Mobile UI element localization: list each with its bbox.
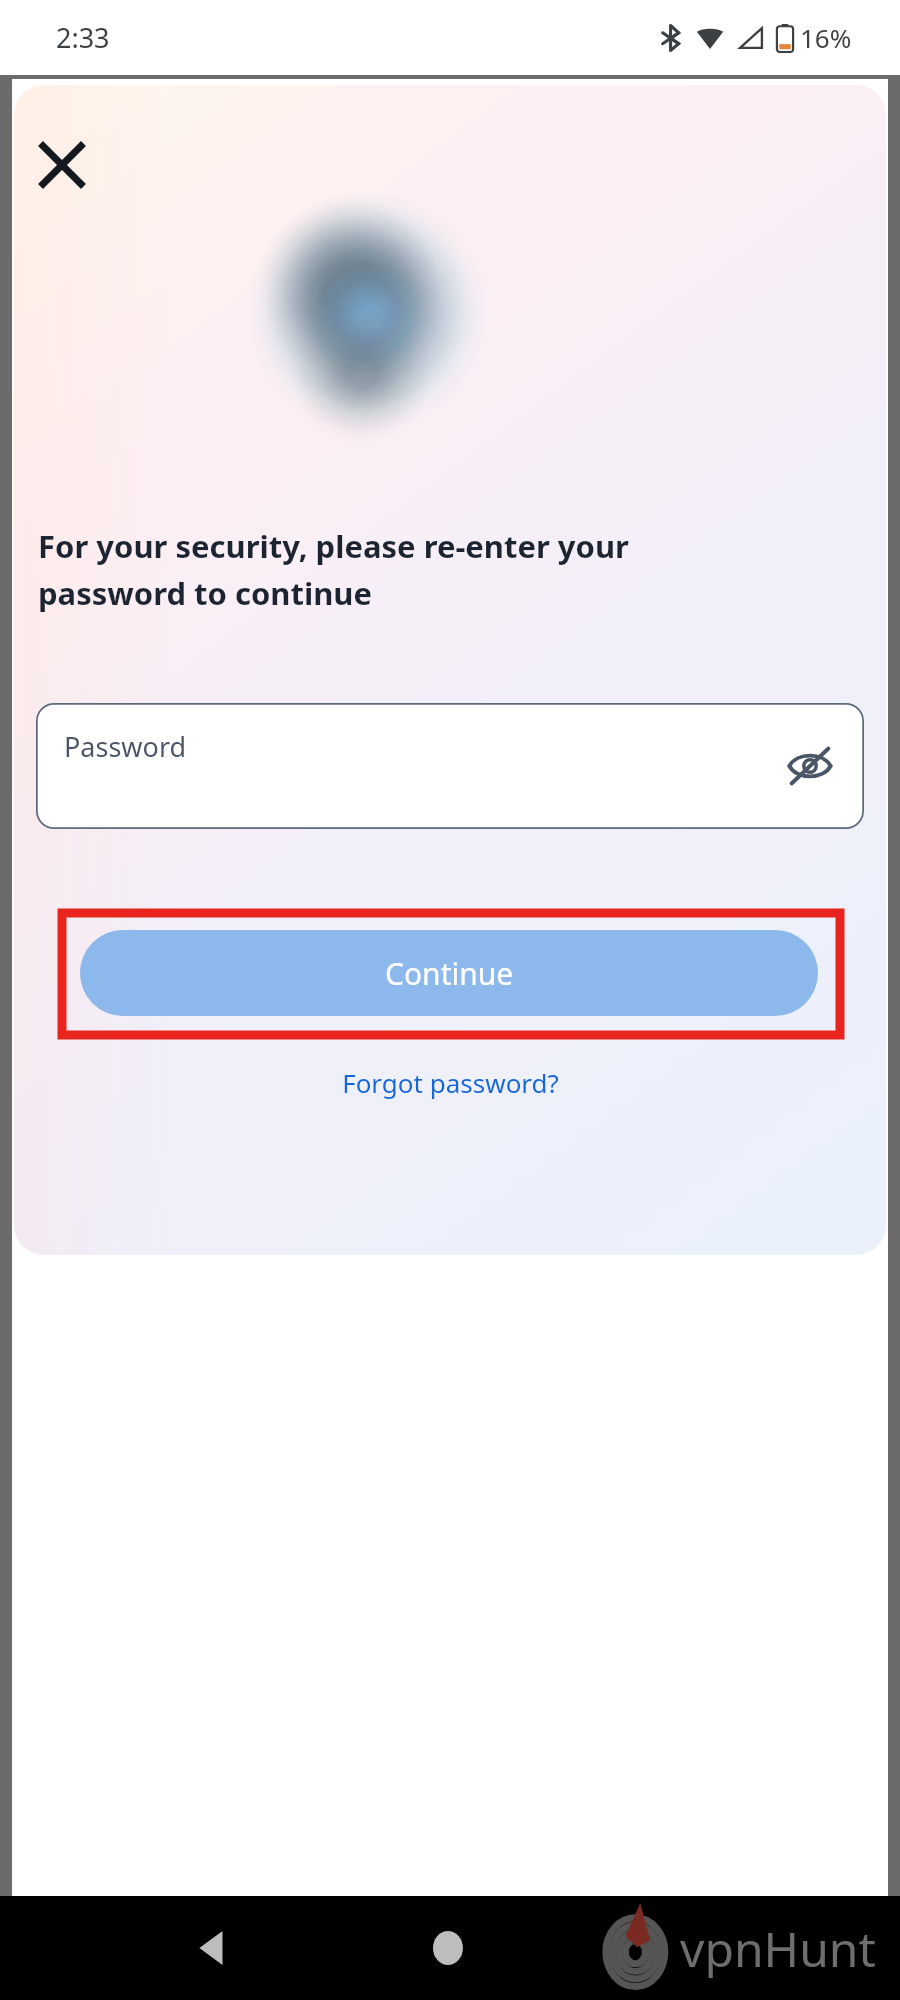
staticText: 2:33	[56, 19, 110, 56]
button[interactable]: Close	[24, 127, 100, 203]
button[interactable]: Continue	[80, 930, 818, 1016]
staticText: Password	[64, 728, 187, 765]
button[interactable]: Forgot password?	[14, 1053, 886, 1111]
button[interactable]: Show password	[774, 730, 846, 802]
staticText: vpnHunt	[680, 1916, 876, 1981]
staticText: Continue	[385, 953, 514, 994]
staticText: Forgot password?	[342, 1065, 559, 1100]
button[interactable]: Home	[405, 1903, 495, 1993]
button[interactable]: Back	[168, 1903, 258, 1993]
staticText: For your security, please re-enter your …	[38, 525, 738, 614]
button[interactable]: Password	[36, 703, 864, 829]
staticText: 16%	[800, 20, 852, 55]
